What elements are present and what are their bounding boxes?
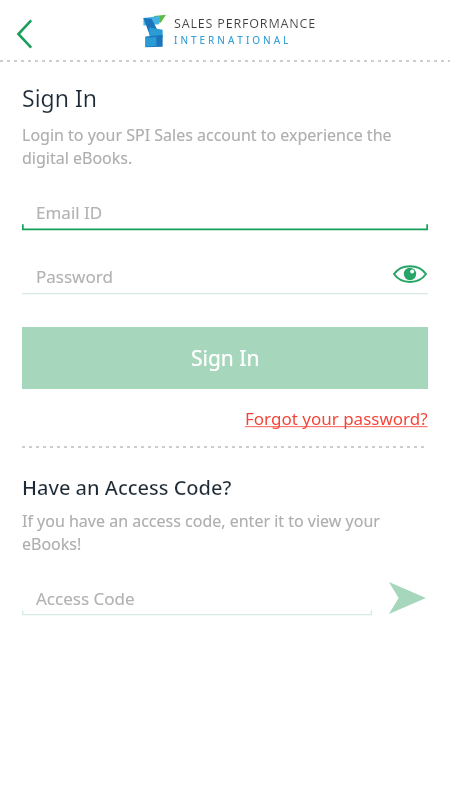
staticText: If you have an access code, enter it to … (22, 510, 428, 555)
button[interactable]: Email ID (22, 193, 428, 231)
button[interactable]: Access Code (22, 580, 372, 616)
button[interactable]: Password (22, 257, 428, 295)
staticText: I N T E R N A T I O N A L (174, 33, 289, 47)
button[interactable]: Show password (392, 260, 428, 288)
staticText: Forgot your password? (245, 407, 428, 430)
button[interactable]: Back (6, 14, 46, 54)
staticText: Sign In (22, 82, 97, 113)
staticText: Password (36, 265, 113, 288)
button[interactable]: Forgot your password? (245, 405, 428, 432)
staticText: Email ID (36, 201, 103, 224)
staticText: Sign In (191, 344, 260, 373)
staticText: Have an Access Code? (22, 474, 232, 501)
staticText: Access Code (36, 587, 135, 610)
staticText: SALES PERFORMANCE (174, 15, 317, 32)
button[interactable]: Sign In (22, 327, 428, 389)
staticText: Login to your SPI Sales account to exper… (22, 124, 428, 169)
button[interactable]: Submit access code (386, 577, 428, 619)
